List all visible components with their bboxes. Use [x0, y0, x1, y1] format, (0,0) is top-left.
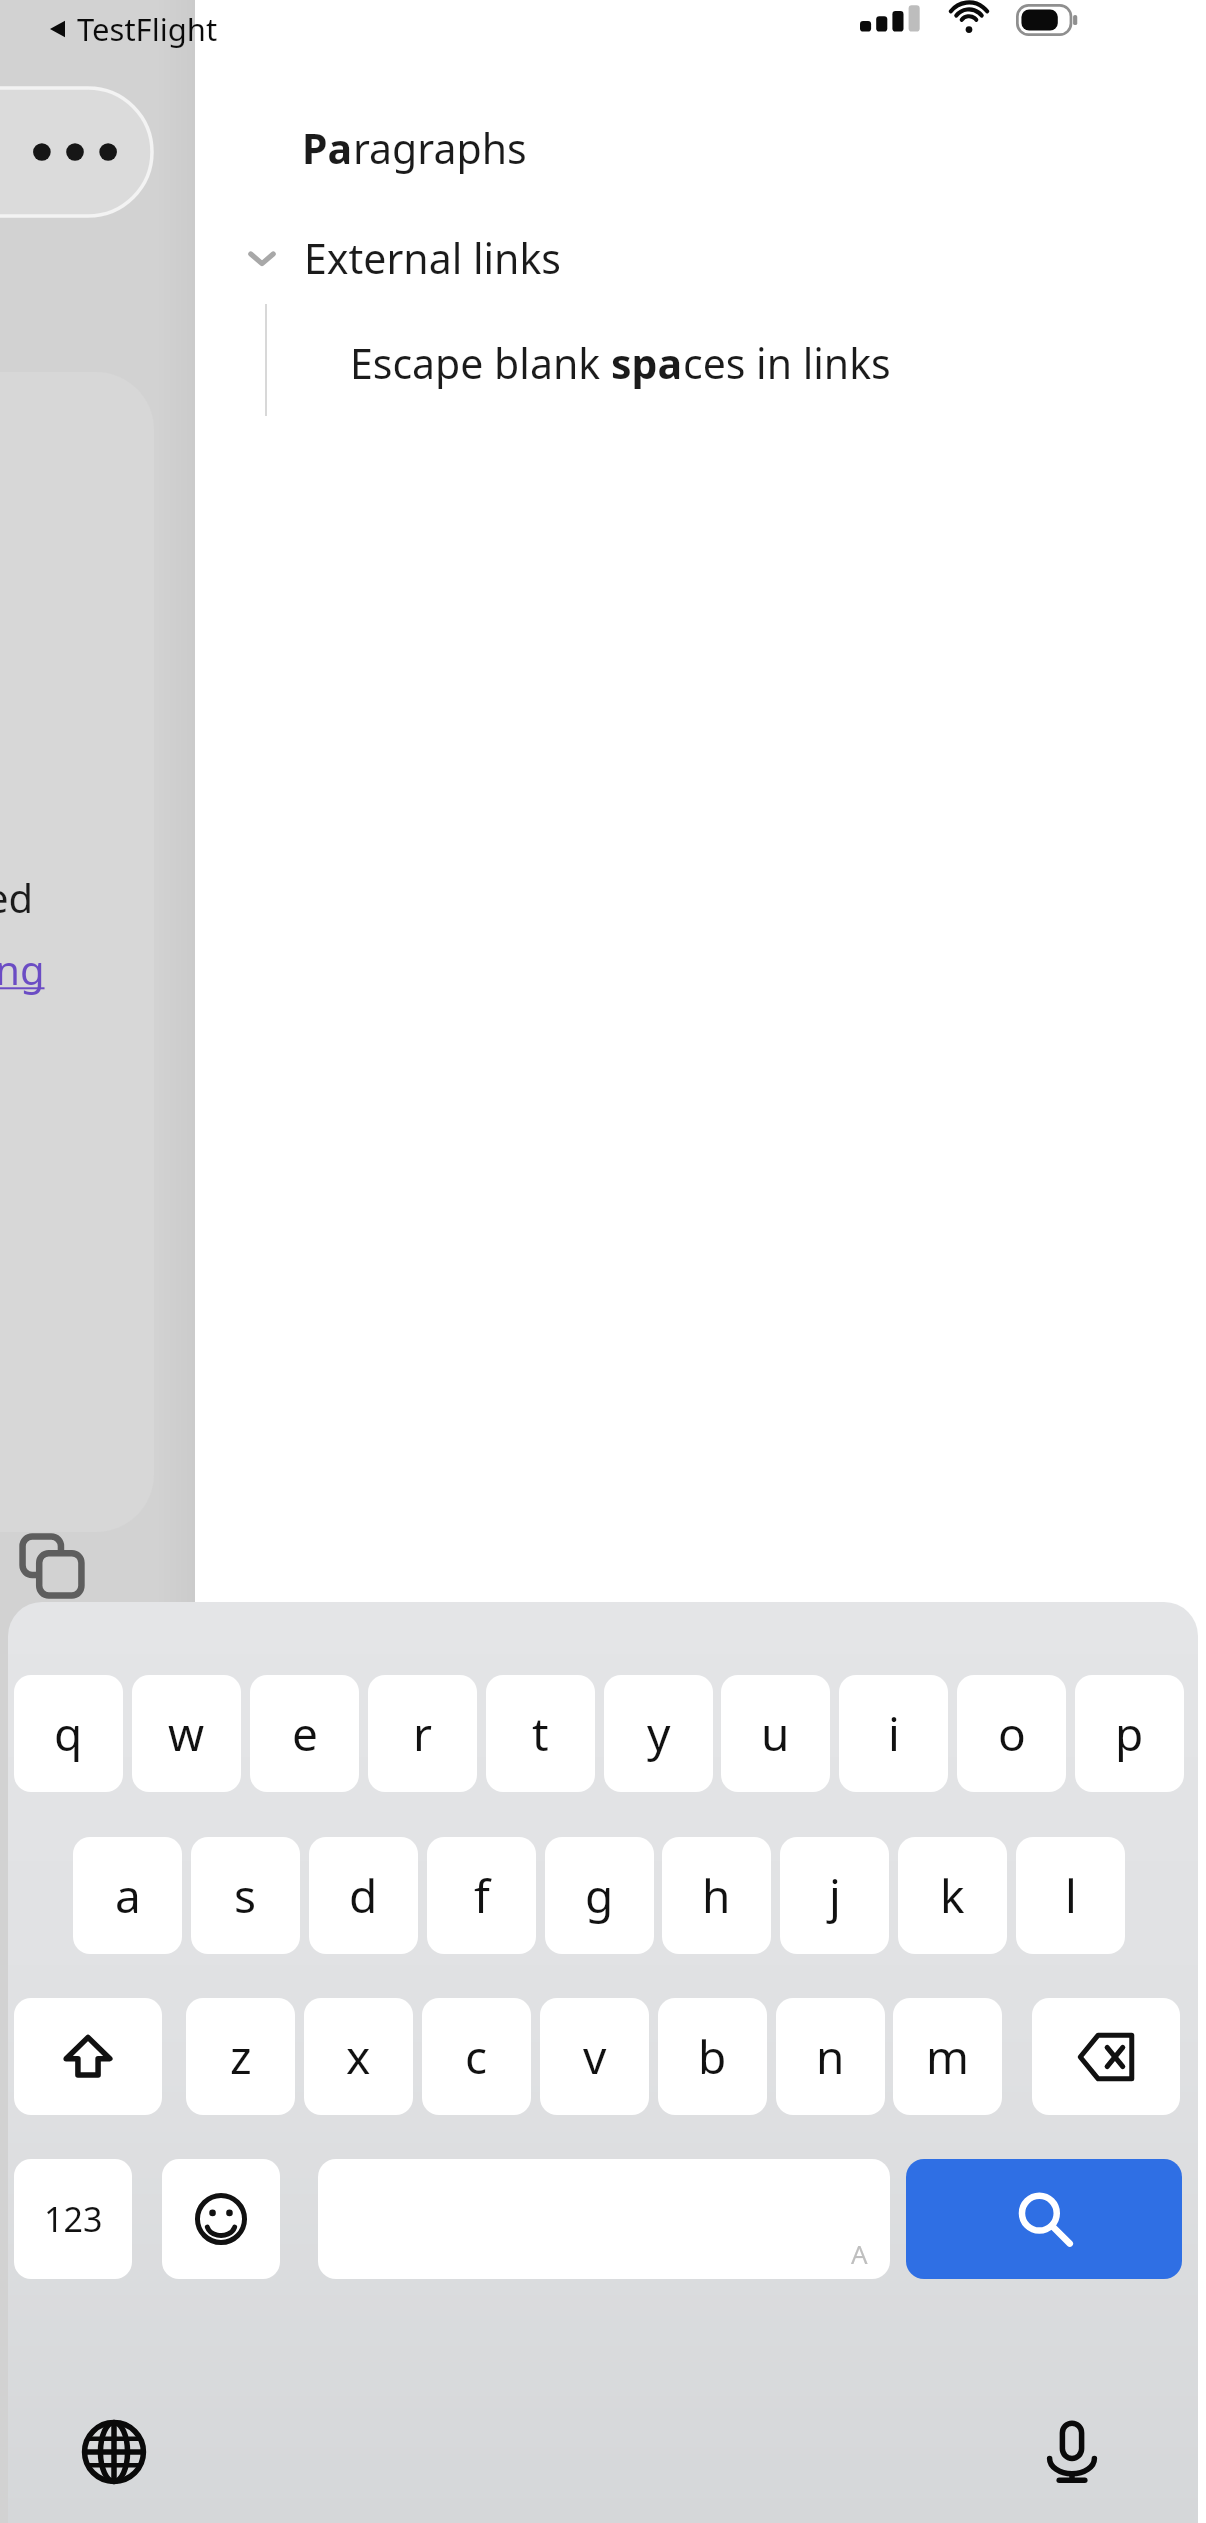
staticText: s: [234, 1864, 257, 1927]
button[interactable]: j: [780, 1837, 889, 1954]
button[interactable]: t: [486, 1675, 595, 1792]
staticText: 123: [44, 2196, 103, 2242]
button[interactable]: m: [893, 1998, 1002, 2115]
staticText: o: [998, 1702, 1026, 1765]
button[interactable]: Tabs: [6, 1520, 98, 1612]
button[interactable]: d: [309, 1837, 418, 1954]
staticText: External links: [304, 230, 561, 286]
button[interactable]: Pa: [195, 105, 1206, 191]
button[interactable]: Backspace: [1032, 1998, 1180, 2115]
button[interactable]: g: [545, 1837, 654, 1954]
staticText: ragraphs: [353, 120, 527, 176]
staticText: f: [474, 1864, 490, 1927]
button[interactable]: Voice input: [1016, 2396, 1128, 2508]
staticText: r: [413, 1702, 432, 1765]
button[interactable]: r: [368, 1675, 477, 1792]
staticText: A: [851, 2236, 868, 2271]
button[interactable]: External links: [195, 215, 1206, 301]
button[interactable]: o: [957, 1675, 1066, 1792]
staticText: h: [702, 1864, 731, 1927]
button[interactable]: Shift: [14, 1998, 162, 2115]
staticText: u: [761, 1702, 790, 1765]
staticText: g: [585, 1864, 614, 1927]
staticText: tting: [0, 942, 45, 996]
staticText: z: [230, 2025, 252, 2088]
staticText: b: [698, 2025, 727, 2088]
button[interactable]: x: [304, 1998, 413, 2115]
button[interactable]: Numbers: [14, 2159, 132, 2279]
button[interactable]: Space: [318, 2159, 890, 2279]
staticText: TestFlight: [77, 8, 218, 50]
staticText: spa: [611, 335, 683, 391]
button[interactable]: z: [186, 1998, 295, 2115]
staticText: j: [829, 1864, 841, 1927]
staticText: Pa: [302, 120, 353, 176]
staticText: p: [1115, 1702, 1144, 1765]
button[interactable]: s: [191, 1837, 300, 1954]
staticText: m: [926, 2025, 970, 2088]
button[interactable]: h: [662, 1837, 771, 1954]
button[interactable]: b: [658, 1998, 767, 2115]
button[interactable]: q: [14, 1675, 123, 1792]
button[interactable]: e: [250, 1675, 359, 1792]
button[interactable]: Emoji: [162, 2159, 280, 2279]
button[interactable]: Change keyboard: [58, 2396, 170, 2508]
staticText: a: [115, 1864, 141, 1927]
staticText: Escape blank: [350, 335, 611, 391]
staticText: c: [465, 2025, 488, 2088]
staticText: n: [816, 2025, 845, 2088]
button[interactable]: c: [422, 1998, 531, 2115]
button[interactable]: i: [839, 1675, 948, 1792]
button[interactable]: l: [1016, 1837, 1125, 1954]
staticText: k: [940, 1864, 965, 1927]
button[interactable]: n: [776, 1998, 885, 2115]
button[interactable]: w: [132, 1675, 241, 1792]
button[interactable]: p: [1075, 1675, 1184, 1792]
staticText: ces in links: [683, 335, 891, 391]
staticText: t: [532, 1702, 549, 1765]
button[interactable]: Escape blank: [195, 320, 1206, 406]
staticText: w: [168, 1702, 205, 1765]
staticText: q: [54, 1702, 83, 1765]
staticText: x: [346, 2025, 371, 2088]
staticText: l: [1065, 1864, 1077, 1927]
button[interactable]: a: [73, 1837, 182, 1954]
staticText: e: [292, 1702, 318, 1765]
staticText: ed: [0, 870, 34, 924]
button[interactable]: v: [540, 1998, 649, 2115]
button[interactable]: k: [898, 1837, 1007, 1954]
staticText: y: [647, 1702, 671, 1765]
button[interactable]: More options: [0, 88, 152, 216]
button[interactable]: TestFlight: [44, 4, 222, 54]
staticText: d: [349, 1864, 378, 1927]
button[interactable]: Page preview: [0, 372, 154, 1532]
staticText: i: [888, 1702, 900, 1765]
button[interactable]: f: [427, 1837, 536, 1954]
button[interactable]: y: [604, 1675, 713, 1792]
button[interactable]: u: [721, 1675, 830, 1792]
staticText: v: [583, 2025, 607, 2088]
button[interactable]: Search: [906, 2159, 1182, 2279]
